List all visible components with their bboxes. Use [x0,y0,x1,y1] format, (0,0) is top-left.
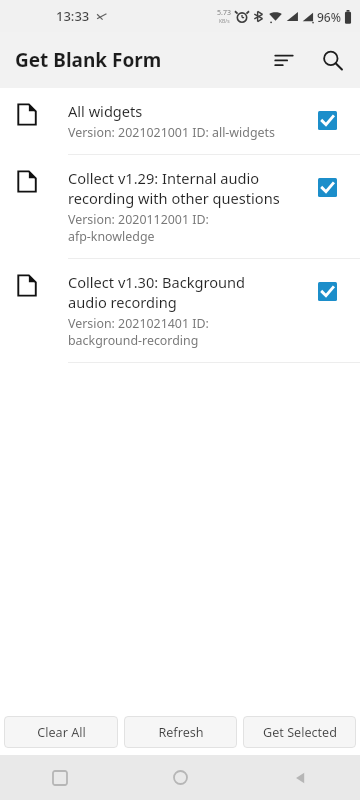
button[interactable]: Recents [0,755,120,800]
button[interactable]: Back [240,755,360,800]
staticText: 13:33 [56,7,90,25]
staticText: 96% [317,9,341,25]
staticText: Refresh [158,724,204,741]
staticText: Collect v1.30: Background audio recordin… [68,272,245,312]
staticText: Collect v1.29: Internal audio recording … [68,168,280,208]
button[interactable]: Selected [310,170,344,204]
staticText: 5.73 [217,8,231,18]
button[interactable]: Clear All [4,716,118,748]
button[interactable]: Collect v1.30: Background audio recordin… [0,259,360,362]
button[interactable]: Search [308,36,356,84]
staticText: KB/s [219,18,230,25]
button[interactable]: Get Selected [243,716,356,748]
button[interactable]: Selected [310,274,344,308]
staticText: All widgets [68,101,143,121]
staticText: Version: 2020112001 ID: afp-knowledge [68,211,209,245]
button[interactable]: Home [120,755,240,800]
button[interactable]: Sort [260,36,308,84]
button[interactable]: Refresh [124,716,237,748]
staticText: Version: 2021021001 ID: all-widgets [68,124,275,141]
button[interactable]: Collect v1.29: Internal audio recording … [0,155,360,258]
button[interactable]: Selected [310,103,344,137]
staticText: Get Selected [263,724,337,741]
button[interactable]: All widgets [0,88,360,154]
staticText: Get Blank Form [15,47,162,73]
staticText: Clear All [37,724,86,741]
staticText: Version: 2021021401 ID: background-recor… [68,315,209,349]
